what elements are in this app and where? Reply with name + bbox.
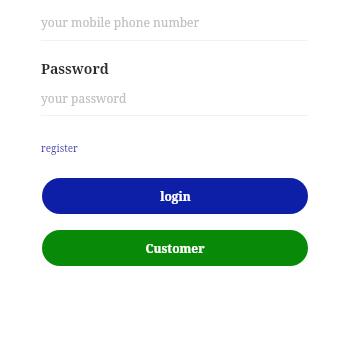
staticText: your mobile phone number xyxy=(41,14,200,30)
staticText: login xyxy=(160,188,191,204)
button[interactable]: your mobile phone number xyxy=(41,11,307,33)
button[interactable]: Customer xyxy=(42,230,308,266)
staticText: Customer xyxy=(145,240,205,256)
staticText: Password xyxy=(41,59,109,78)
button[interactable]: register xyxy=(41,141,78,155)
staticText: register xyxy=(41,141,78,155)
staticText: your password xyxy=(41,90,127,106)
button[interactable]: your password xyxy=(41,89,307,107)
button[interactable]: login xyxy=(42,178,308,214)
